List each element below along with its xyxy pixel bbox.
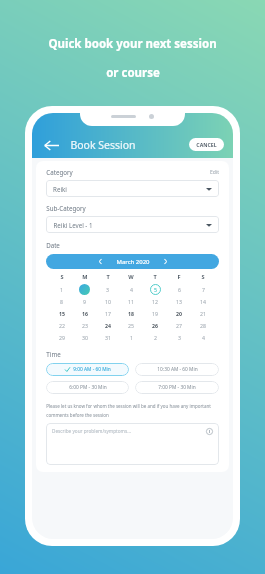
button[interactable]: 1 [50,283,73,295]
button[interactable]: 23 [73,319,96,331]
staticText: 23 [82,322,88,329]
staticText: or course [106,65,160,81]
button[interactable]: 29 [50,331,73,343]
staticText: S [201,273,205,281]
staticText: 27 [176,322,182,329]
staticText: 4 [202,334,205,341]
button[interactable]: 16 [73,307,96,319]
button[interactable]: 9:00 AM - 60 Min [46,363,129,376]
staticText: Please let us know for whom the session … [46,403,211,409]
staticText: 12 [152,298,158,305]
button[interactable]: 7:00 PM - 30 Min [135,381,219,394]
staticText: 9:00 AM - 60 Min [73,366,111,373]
button[interactable]: 24 [96,319,119,331]
staticText: Category [46,168,73,176]
staticText: T [153,273,157,281]
staticText: 28 [200,322,206,329]
staticText: 2 [154,334,157,341]
button[interactable]: 11 [119,295,143,307]
staticText: Describe your problem/symptoms... [52,428,131,434]
button[interactable]: 3 [167,331,191,343]
staticText: 8 [60,298,63,305]
staticText: 21 [200,310,206,317]
staticText: 31 [105,334,111,341]
staticText: Time [46,350,61,358]
staticText: 10 [105,298,111,305]
staticText: Book Session [70,138,136,152]
button[interactable]: Reiki Level - 1 [46,216,219,233]
staticText: 7:00 PM - 30 Min [158,384,196,391]
staticText: 10:30 AM - 60 Min [157,366,198,373]
button[interactable]: 4 [119,283,143,295]
button[interactable]: 3 [96,283,119,295]
staticText: CANCEL [196,141,217,148]
button[interactable]: 6 [167,283,191,295]
staticText: Sub-Category [46,204,86,212]
button[interactable]: 10:30 AM - 60 Min [135,363,219,376]
button[interactable]: Reiki [46,180,219,197]
button[interactable]: 31 [96,331,119,343]
staticText: M [82,273,88,281]
staticText: T [106,273,110,281]
button[interactable]: Next month [160,256,171,267]
staticText: 3 [106,286,109,293]
button[interactable] [73,283,96,295]
button[interactable]: 30 [73,331,96,343]
staticText: 25 [128,322,134,329]
staticText: 11 [128,298,134,305]
staticText: 22 [59,322,65,329]
button[interactable]: 14 [191,295,215,307]
button[interactable]: Edit [210,169,219,176]
button[interactable]: 12 [143,295,167,307]
staticText: 6 [178,286,181,293]
staticText: Reiki [53,185,67,193]
staticText: 1 [60,286,63,293]
button[interactable]: Back [42,136,60,154]
button[interactable]: Describe your problem/symptoms... [46,423,219,465]
button[interactable]: 25 [119,319,143,331]
staticText: S [60,273,64,281]
staticText: 4 [130,286,133,293]
button[interactable]: 9 [73,295,96,307]
button[interactable]: 28 [191,319,215,331]
staticText: 18 [128,310,134,317]
button[interactable]: 21 [191,307,215,319]
staticText: 26 [152,322,158,329]
button[interactable]: 7 [191,283,215,295]
staticText: 3 [178,334,181,341]
staticText: 9 [83,298,86,305]
staticText: 19 [152,310,158,317]
staticText: 29 [59,334,65,341]
staticText: W [128,273,134,281]
button[interactable]: CANCEL [189,138,224,151]
button[interactable]: 17 [96,307,119,319]
staticText: Reiki Level - 1 [53,221,93,229]
staticText: comments before the session [46,412,109,418]
button[interactable]: 8 [50,295,73,307]
button[interactable]: 15 [50,307,73,319]
staticText: 16 [82,310,88,317]
button[interactable]: 18 [119,307,143,319]
button[interactable]: 1 [119,331,143,343]
staticText: March 2020 [116,258,150,266]
button[interactable]: 22 [50,319,73,331]
button[interactable]: 4 [191,331,215,343]
staticText: Edit [210,169,219,176]
button[interactable]: 2 [143,331,167,343]
button[interactable]: Previous month [95,256,106,267]
staticText: 30 [82,334,88,341]
button[interactable]: 20 [167,307,191,319]
button[interactable]: 19 [143,307,167,319]
button[interactable]: 6:00 PM - 30 Min [46,381,129,394]
button[interactable]: 27 [167,319,191,331]
button[interactable]: 5 [143,283,167,295]
button[interactable]: 13 [167,295,191,307]
staticText: 5 [154,286,157,293]
button[interactable]: 10 [96,295,119,307]
staticText: Date [46,241,60,249]
button[interactable]: 26 [143,319,167,331]
staticText: 6:00 PM - 30 Min [69,384,107,391]
staticText: 1 [130,334,133,341]
staticText: 13 [176,298,182,305]
staticText: Quick book your next session [48,36,217,52]
